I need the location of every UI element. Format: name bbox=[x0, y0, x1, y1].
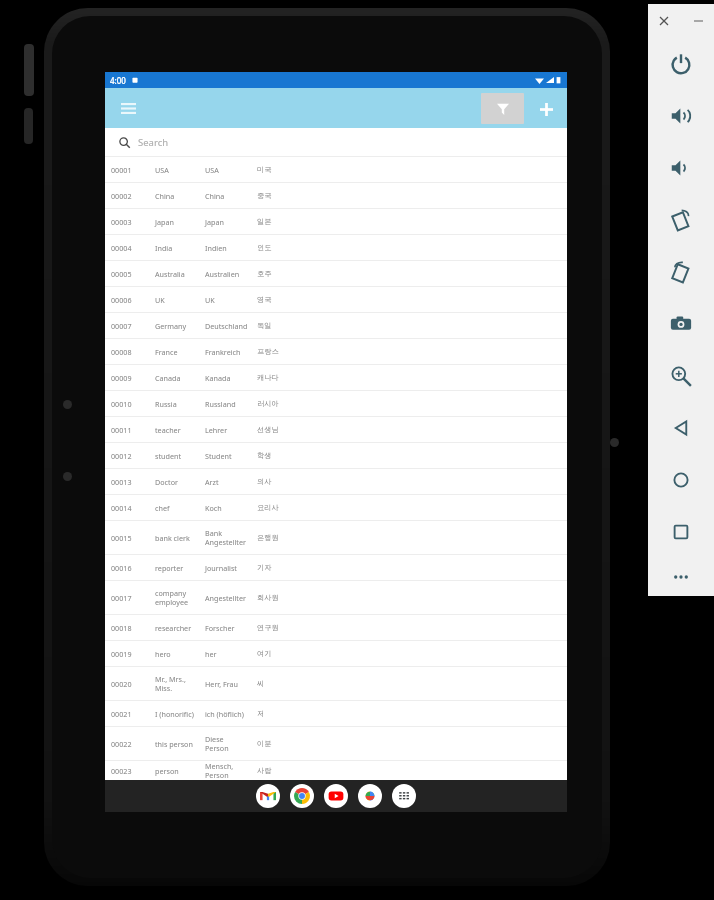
staticText: 4:00 bbox=[110, 75, 126, 86]
button[interactable]: Filter bbox=[481, 93, 524, 124]
staticText: 회사원 bbox=[257, 593, 279, 602]
staticText: Japan bbox=[155, 217, 174, 227]
button[interactable]: Gmail bbox=[256, 784, 280, 808]
staticText: reporter bbox=[155, 563, 184, 573]
staticText: 00010 bbox=[111, 399, 132, 409]
button[interactable]: Zoom bbox=[648, 350, 714, 402]
staticText: UK bbox=[155, 295, 165, 305]
button[interactable]: 00003 bbox=[105, 208, 567, 234]
button[interactable]: All apps bbox=[392, 784, 416, 808]
staticText: 중국 bbox=[257, 191, 272, 200]
button[interactable]: More bbox=[648, 558, 714, 596]
staticText: Indien bbox=[205, 243, 227, 253]
staticText: 00002 bbox=[111, 191, 132, 201]
staticText: 00005 bbox=[111, 269, 132, 279]
staticText: Bank Angestellter bbox=[205, 528, 246, 547]
button[interactable]: 00014 bbox=[105, 494, 567, 520]
staticText: France bbox=[155, 347, 178, 357]
button[interactable]: Photos bbox=[358, 784, 382, 808]
staticText: 00015 bbox=[111, 533, 132, 543]
staticText: 미국 bbox=[257, 165, 272, 174]
staticText: 00014 bbox=[111, 503, 132, 513]
button[interactable]: Add bbox=[533, 96, 559, 122]
button[interactable]: 00021 bbox=[105, 700, 567, 726]
button[interactable]: 00008 bbox=[105, 338, 567, 364]
staticText: Russia bbox=[155, 399, 177, 409]
button[interactable]: Take screenshot bbox=[648, 298, 714, 350]
button[interactable]: 00023 bbox=[105, 760, 567, 780]
button[interactable]: Rotate left bbox=[648, 194, 714, 246]
staticText: China bbox=[205, 191, 225, 201]
staticText: 00009 bbox=[111, 373, 132, 383]
button[interactable]: Power bbox=[648, 38, 714, 90]
button[interactable]: Search bbox=[105, 128, 567, 156]
staticText: Germany bbox=[155, 321, 187, 331]
button[interactable]: 00018 bbox=[105, 614, 567, 640]
button[interactable]: Volume up bbox=[648, 90, 714, 142]
staticText: Angestellter bbox=[205, 593, 246, 603]
staticText: 씨 bbox=[257, 679, 265, 688]
staticText: hero bbox=[155, 649, 171, 659]
button[interactable]: 00007 bbox=[105, 312, 567, 338]
staticText: 00020 bbox=[111, 679, 132, 689]
button[interactable]: 00019 bbox=[105, 640, 567, 666]
button[interactable]: 00006 bbox=[105, 286, 567, 312]
staticText: Diese Person bbox=[205, 734, 229, 753]
button[interactable]: 00011 bbox=[105, 416, 567, 442]
staticText: Frankreich bbox=[205, 347, 241, 357]
staticText: USA bbox=[155, 165, 169, 175]
staticText: 00019 bbox=[111, 649, 132, 659]
button[interactable]: Minimize bbox=[690, 13, 706, 29]
staticText: company employee bbox=[155, 588, 189, 607]
button[interactable]: Rotate right bbox=[648, 246, 714, 298]
button[interactable]: 00015 bbox=[105, 520, 567, 554]
staticText: Doctor bbox=[155, 477, 178, 487]
staticText: 00011 bbox=[111, 425, 132, 435]
staticText: 일본 bbox=[257, 217, 272, 226]
staticText: 학생 bbox=[257, 451, 272, 460]
button[interactable]: 00009 bbox=[105, 364, 567, 390]
button[interactable]: Home bbox=[648, 454, 714, 506]
staticText: Lehrer bbox=[205, 425, 228, 435]
staticText: ich (höflich) bbox=[205, 709, 244, 719]
button[interactable]: 00020 bbox=[105, 666, 567, 700]
button[interactable]: 00012 bbox=[105, 442, 567, 468]
button[interactable]: 00004 bbox=[105, 234, 567, 260]
button[interactable]: YouTube bbox=[324, 784, 348, 808]
button[interactable]: 00001 bbox=[105, 156, 567, 182]
button[interactable]: Close bbox=[656, 13, 672, 29]
staticText: 00012 bbox=[111, 451, 132, 461]
staticText: Mr., Mrs., Miss. bbox=[155, 674, 186, 693]
button[interactable]: Open navigation menu bbox=[113, 93, 143, 123]
staticText: 00004 bbox=[111, 243, 132, 253]
staticText: UK bbox=[205, 295, 215, 305]
staticText: Japan bbox=[205, 217, 224, 227]
button[interactable]: Back bbox=[648, 402, 714, 454]
button[interactable]: 00022 bbox=[105, 726, 567, 760]
staticText: Journalist bbox=[205, 563, 237, 573]
staticText: chef bbox=[155, 503, 170, 513]
button[interactable]: Overview bbox=[648, 506, 714, 558]
staticText: 의사 bbox=[257, 477, 272, 486]
staticText: 00021 bbox=[111, 709, 132, 719]
button[interactable]: 00005 bbox=[105, 260, 567, 286]
staticText: 사람 bbox=[257, 766, 272, 775]
staticText: 00008 bbox=[111, 347, 132, 357]
staticText: 독일 bbox=[257, 321, 272, 330]
staticText: person bbox=[155, 766, 179, 776]
staticText: 00003 bbox=[111, 217, 132, 227]
button[interactable]: 00016 bbox=[105, 554, 567, 580]
button[interactable]: 00002 bbox=[105, 182, 567, 208]
button[interactable]: 00010 bbox=[105, 390, 567, 416]
staticText: 선생님 bbox=[257, 425, 279, 434]
staticText: 러시아 bbox=[257, 399, 279, 408]
staticText: USA bbox=[205, 165, 219, 175]
staticText: China bbox=[155, 191, 175, 201]
button[interactable]: Chrome bbox=[290, 784, 314, 808]
staticText: 00007 bbox=[111, 321, 132, 331]
button[interactable]: 00017 bbox=[105, 580, 567, 614]
staticText: 요리사 bbox=[257, 503, 279, 512]
staticText: 기자 bbox=[257, 563, 272, 572]
button[interactable]: Volume down bbox=[648, 142, 714, 194]
button[interactable]: 00013 bbox=[105, 468, 567, 494]
